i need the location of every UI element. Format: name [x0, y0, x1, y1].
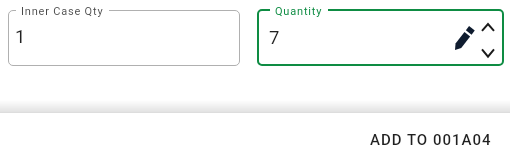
button[interactable]	[480, 47, 496, 61]
button[interactable]	[480, 20, 496, 34]
staticText: 1	[15, 26, 26, 48]
button[interactable]: ADD TO 001A04	[356, 123, 506, 157]
staticText: Inner Case Qty	[21, 5, 104, 18]
button[interactable]	[452, 24, 478, 52]
staticText: ADD TO 001A04	[370, 131, 492, 149]
staticText: Quantity	[275, 5, 323, 18]
button[interactable]	[8, 10, 240, 66]
button[interactable]	[257, 9, 504, 66]
staticText: 7	[269, 27, 280, 49]
